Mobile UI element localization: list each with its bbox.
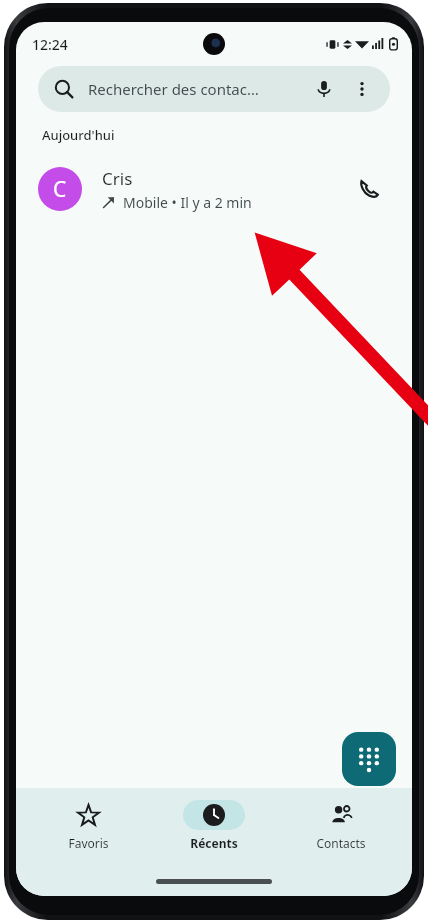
button[interactable]: Pavé numérique xyxy=(342,732,396,786)
button[interactable]: Contacts xyxy=(286,798,396,851)
staticText: Cris xyxy=(102,167,133,190)
button[interactable]: Recherche vocale xyxy=(312,77,336,101)
staticText: 12:24 xyxy=(32,35,68,54)
staticText: C xyxy=(53,175,67,204)
staticText: Aujourd'hui xyxy=(42,126,115,144)
button[interactable]: C xyxy=(16,156,412,222)
button[interactable]: Plus d'options xyxy=(350,77,374,101)
button[interactable]: Appeler Cris xyxy=(348,168,390,210)
staticText: Rechercher des contac… xyxy=(88,79,306,99)
button[interactable]: Favoris xyxy=(33,798,143,851)
staticText: Contacts xyxy=(316,835,366,851)
staticText: Favoris xyxy=(68,835,109,851)
staticText: Récents xyxy=(190,835,238,851)
staticText: Mobile • Il y a 2 min xyxy=(123,193,252,212)
button[interactable]: Rechercher des contac… xyxy=(38,66,390,112)
button[interactable]: Récents xyxy=(159,798,269,851)
